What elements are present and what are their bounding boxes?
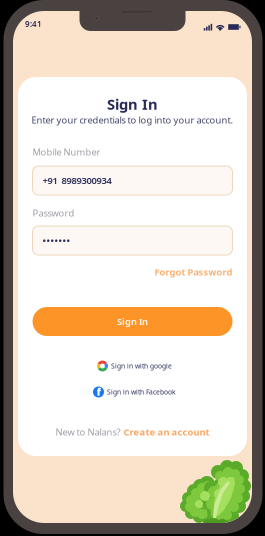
staticText: Sign in with google [111,362,172,370]
staticText: Password [32,207,74,219]
staticText: 9:41 [25,19,42,29]
staticText: Forgot Password [154,266,232,278]
button[interactable]: Sign in with google [97,360,172,371]
button[interactable]: Sign In [32,307,232,336]
staticText: Create an account [123,426,209,438]
staticText: Sign In [117,315,148,328]
staticText: Mobile Number [32,146,100,158]
button[interactable]: f [93,386,176,397]
staticText: f [96,384,100,399]
staticText: Sign In [107,94,158,114]
staticText: +91 8989300934 [42,174,111,187]
staticText: New to Nalans? [55,426,120,438]
staticText: Sign in with Facebook [107,388,176,396]
button[interactable]: Forgot Password [32,266,232,278]
staticText: ••••••• [42,234,70,247]
button[interactable]: New to Nalans? [55,426,209,438]
staticText: Enter your credentials to log into your … [31,114,233,126]
